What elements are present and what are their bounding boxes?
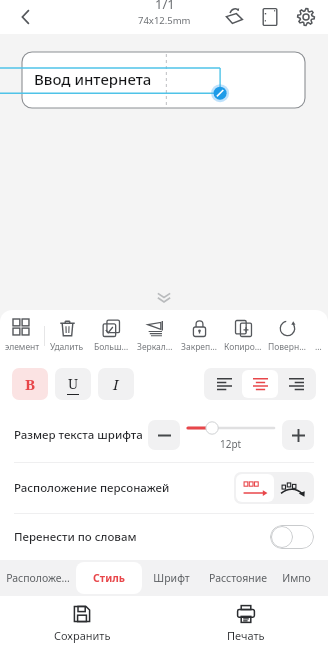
button[interactable]: Align left xyxy=(206,370,242,398)
staticText: Копиро… xyxy=(224,341,262,353)
button[interactable]: Font size slider xyxy=(188,419,274,437)
button[interactable]: Align center xyxy=(242,370,278,398)
button[interactable]: Печать xyxy=(164,596,328,650)
staticText: Расположение персонажей xyxy=(14,480,170,496)
button[interactable]: Расположе… xyxy=(0,560,76,596)
staticText: Больш… xyxy=(94,341,129,353)
staticText: 12pt xyxy=(220,437,242,451)
staticText: Ввод интернета xyxy=(34,69,152,89)
button[interactable]: Underline xyxy=(55,368,91,400)
staticText: Расстояние xyxy=(209,571,267,585)
staticText: B xyxy=(25,374,36,394)
staticText: I xyxy=(113,374,119,394)
button[interactable]: Collapse panel xyxy=(0,284,328,310)
staticText: Сохранить xyxy=(54,628,111,643)
button[interactable]: Straight text xyxy=(236,474,274,502)
button[interactable]: Align right xyxy=(278,370,314,398)
button[interactable]: Scale 1.0x xyxy=(254,1,286,33)
staticText: Поверн… xyxy=(268,341,306,353)
button[interactable]: Italic xyxy=(98,368,134,400)
button[interactable]: Удалить xyxy=(45,314,89,358)
button[interactable]: Bold xyxy=(12,368,48,400)
staticText: Шрифт xyxy=(153,571,190,585)
button[interactable]: Импо xyxy=(276,560,316,596)
staticText: Расположе… xyxy=(6,571,70,585)
button[interactable]: Шрифт xyxy=(142,560,200,596)
button[interactable]: элемент xyxy=(0,314,44,358)
button[interactable]: … xyxy=(309,314,328,358)
button[interactable]: Больш… xyxy=(89,314,133,358)
button[interactable]: Стиль xyxy=(76,562,142,594)
staticText: Перенести по словам xyxy=(14,529,137,545)
staticText: U xyxy=(68,374,79,393)
staticText: 1/1 xyxy=(155,0,175,13)
staticText: 74x12.5mm xyxy=(138,14,191,27)
button[interactable]: Расстояние xyxy=(200,560,276,596)
button[interactable]: Word wrap toggle xyxy=(270,525,314,549)
staticText: Импо xyxy=(282,571,311,585)
staticText: Стиль xyxy=(93,571,125,585)
button[interactable]: Поверн… xyxy=(265,314,309,358)
staticText: Зеркал… xyxy=(137,341,173,353)
button[interactable]: Curved text xyxy=(274,474,312,502)
staticText: Размер текста шрифта xyxy=(14,427,143,443)
button[interactable]: Settings xyxy=(290,1,322,33)
button[interactable]: Зеркал… xyxy=(133,314,177,358)
button[interactable]: Rotate page xyxy=(218,1,250,33)
staticText: Печать xyxy=(227,628,265,643)
button[interactable]: Закреп… xyxy=(177,314,221,358)
button[interactable]: Increase font size xyxy=(282,420,314,450)
button[interactable]: Back xyxy=(6,0,46,34)
staticText: элемент xyxy=(5,341,40,353)
button[interactable]: Сохранить xyxy=(0,596,164,650)
button[interactable]: Decrease font size xyxy=(148,420,180,450)
staticText: Закреп… xyxy=(181,341,217,353)
staticText: … xyxy=(315,341,322,353)
button[interactable]: Копиро… xyxy=(221,314,265,358)
staticText: Удалить xyxy=(50,341,84,353)
